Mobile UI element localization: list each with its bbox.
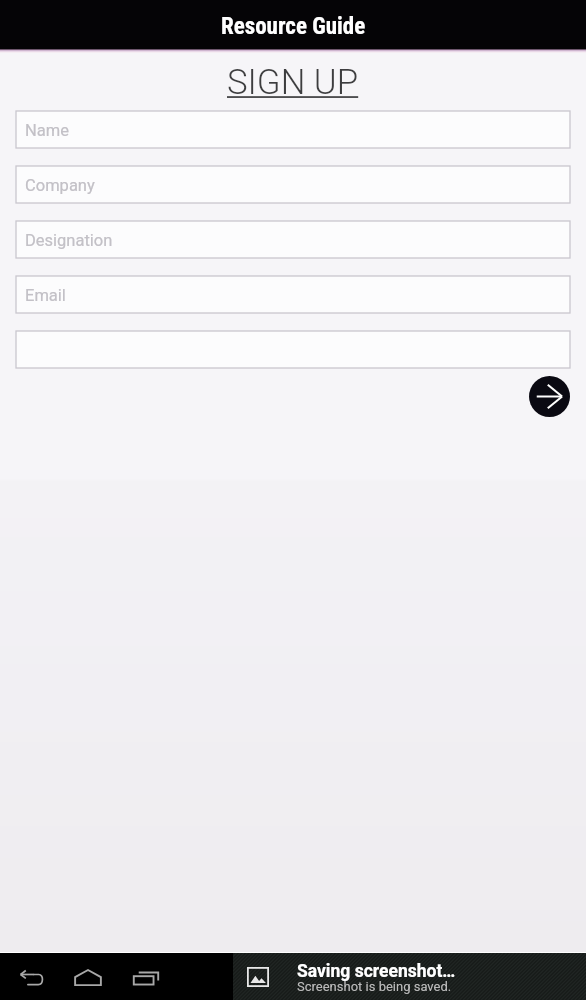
staticText: Resource Guide xyxy=(221,13,366,40)
staticText: Email xyxy=(25,286,66,305)
staticText: Saving screenshot… xyxy=(297,961,456,982)
staticText: SIGN UP xyxy=(227,62,359,103)
staticText: Screenshot is being saved. xyxy=(297,979,452,994)
button[interactable]: Back xyxy=(13,959,49,995)
button[interactable]: Company xyxy=(16,166,570,203)
staticText: Designation xyxy=(25,231,113,250)
staticText: Company xyxy=(25,176,95,195)
button[interactable]: Email xyxy=(16,276,570,313)
button[interactable]: Home xyxy=(70,959,106,995)
button[interactable]: Name xyxy=(16,111,570,148)
button[interactable] xyxy=(16,331,570,368)
button[interactable]: Saving screenshot… xyxy=(233,953,586,1000)
button[interactable]: Designation xyxy=(16,221,570,258)
button[interactable]: Next xyxy=(529,376,570,417)
staticText: Name xyxy=(25,121,69,140)
button[interactable]: Recent apps xyxy=(128,959,164,995)
